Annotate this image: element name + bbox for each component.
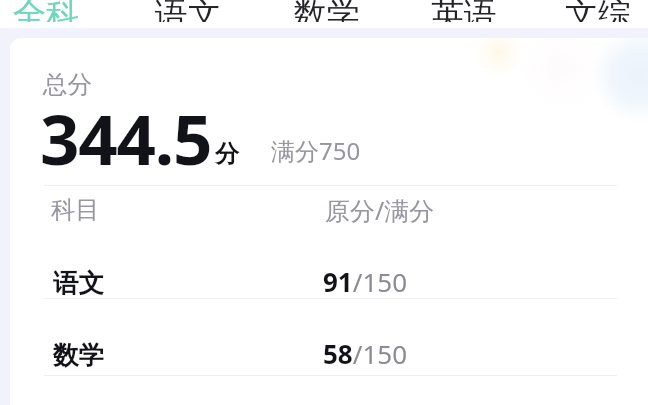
staticText: 原分/满分 [325, 193, 435, 227]
staticText: 58/150 [323, 336, 408, 371]
staticText: 分 [215, 139, 239, 169]
staticText: 全科 [13, 0, 79, 22]
staticText: 满分750 [271, 134, 361, 167]
button[interactable]: 英语 [411, 0, 517, 22]
staticText: 数学 [294, 0, 360, 22]
staticText: 文综 [565, 0, 631, 22]
button[interactable]: 文综 [545, 0, 648, 22]
button[interactable]: 语文 [10, 253, 648, 313]
staticText: 语文 [53, 267, 104, 299]
staticText: 语文 [155, 0, 221, 22]
staticText: 英语 [431, 0, 497, 22]
button[interactable]: 全科 [0, 0, 99, 22]
staticText: 总分 [43, 69, 92, 100]
button[interactable]: 语文 [135, 0, 241, 22]
staticText: 数学 [53, 339, 104, 371]
button[interactable]: 数学 [274, 0, 380, 22]
staticText: 344.5 [40, 91, 212, 185]
staticText: 科目 [51, 194, 100, 225]
button[interactable]: 数学 [10, 325, 648, 385]
staticText: 91/150 [323, 264, 408, 299]
